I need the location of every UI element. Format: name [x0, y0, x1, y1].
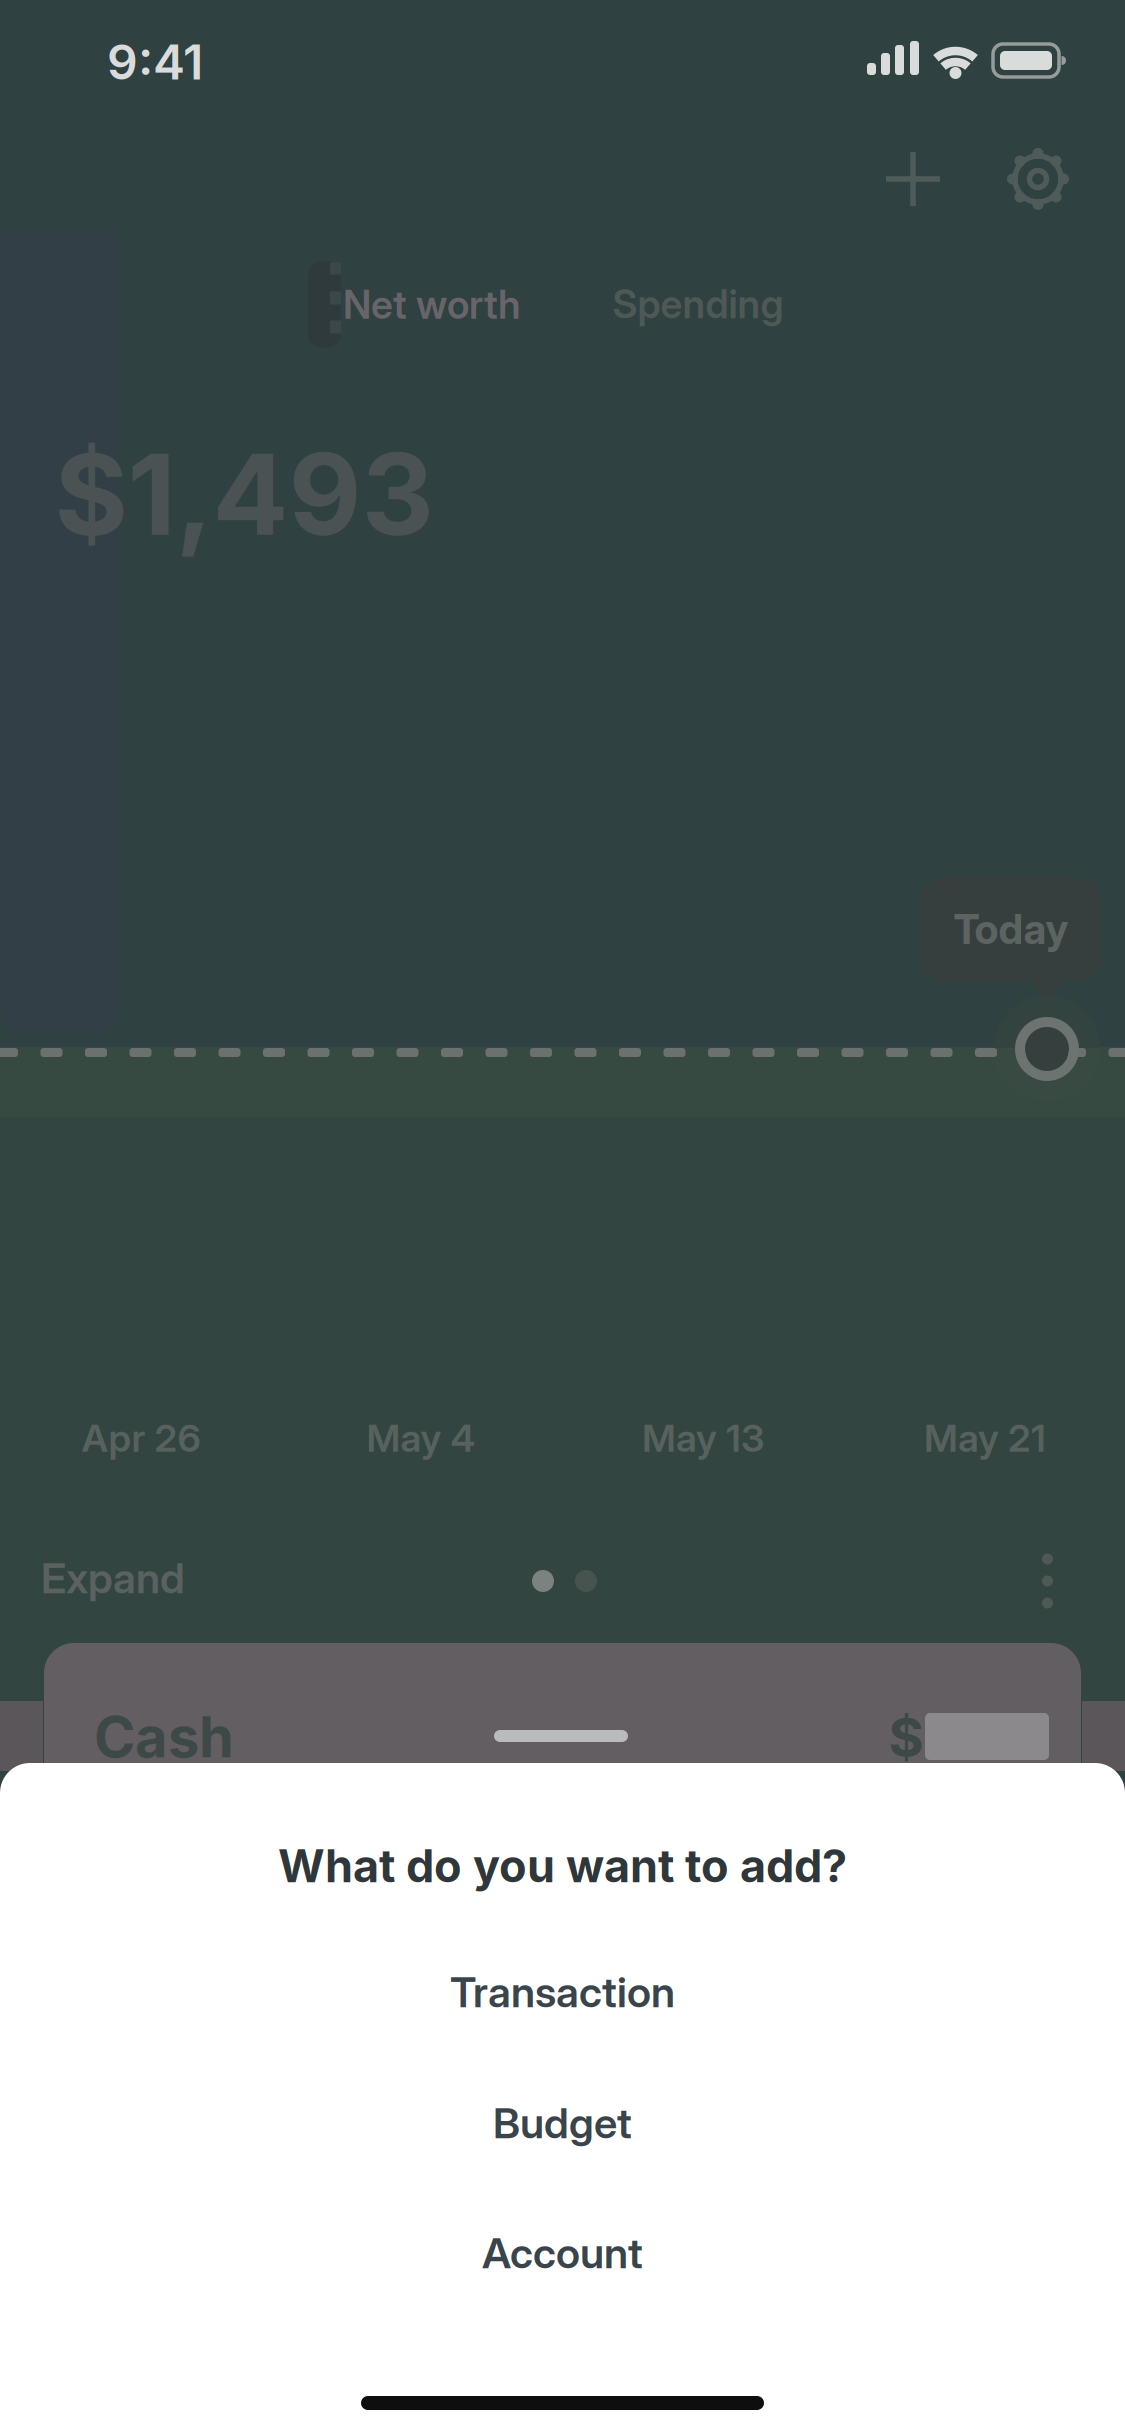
button[interactable]: Settings [1003, 144, 1073, 214]
button[interactable]: Add [881, 147, 945, 211]
button[interactable]: Expand [41, 1553, 185, 1603]
button[interactable]: Spending [568, 249, 828, 359]
staticText: Transaction [450, 1967, 675, 2017]
staticText: May 21 [924, 1415, 1046, 1461]
staticText: Net worth [343, 281, 521, 328]
staticText: Cash [94, 1703, 234, 1771]
staticText: Today [953, 904, 1068, 954]
staticText: May 13 [642, 1415, 764, 1461]
staticText: Spending [612, 280, 783, 328]
button[interactable]: Account [0, 2198, 1125, 2308]
button[interactable]: More options [1015, 1546, 1080, 1615]
staticText: 9:41 [107, 33, 203, 91]
staticText: May 4 [366, 1415, 475, 1461]
button[interactable]: Budget [0, 2068, 1125, 2178]
staticText: $1,493 [54, 426, 433, 562]
staticText: What do you want to add? [278, 1839, 847, 1893]
staticText: Apr 26 [81, 1415, 200, 1461]
staticText: Expand [41, 1553, 185, 1603]
staticText: $ [888, 1704, 923, 1770]
button[interactable]: Net worth [300, 249, 550, 359]
staticText: Account [482, 2228, 643, 2278]
button[interactable]: Transaction [0, 1937, 1125, 2047]
button[interactable]: Cash [44, 1643, 1081, 1813]
staticText: Budget [493, 2098, 632, 2148]
